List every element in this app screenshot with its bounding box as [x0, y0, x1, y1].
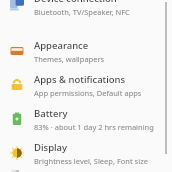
staticText: Appearance [34, 39, 89, 52]
button[interactable]: Sound [0, 170, 172, 172]
button[interactable]: Device connection [0, 0, 172, 21]
other: Device connection [10, 0, 24, 11]
button[interactable]: Display [0, 136, 172, 170]
button[interactable]: Appearance [0, 34, 172, 68]
other: Sound [10, 170, 24, 172]
staticText: Display [34, 141, 68, 154]
staticText: Battery [34, 107, 68, 120]
staticText: App permissions, Default apps [34, 88, 142, 98]
staticText: 83% · about 1 day 2 hrs remaining [34, 122, 154, 132]
staticText: Brightness level, Sleep, Font size [34, 156, 148, 166]
button[interactable]: Apps and notifications [0, 68, 172, 102]
other: Appearance [10, 44, 24, 58]
staticText: Bluetooth, TV/Speaker, NFC [34, 7, 130, 17]
staticText: Apps & notifications [34, 73, 126, 86]
button[interactable]: Battery [0, 102, 172, 136]
other: Apps and notifications [10, 78, 24, 92]
other: Battery [10, 112, 24, 126]
staticText: Themes, wallpapers [34, 54, 105, 64]
staticText: Device connection [34, 0, 117, 5]
other: Display [10, 146, 24, 160]
